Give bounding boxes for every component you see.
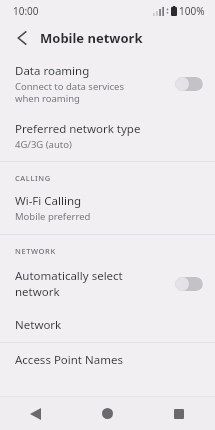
button[interactable]: Automatically select network <box>0 260 215 309</box>
staticText: Preferred network type <box>15 121 141 137</box>
button[interactable]: Home <box>71 397 143 430</box>
staticText: Wi-Fi Calling <box>15 193 82 209</box>
button[interactable]: Network <box>0 309 215 342</box>
button[interactable]: Access Point Names <box>0 343 215 377</box>
button[interactable]: Toggle <box>175 77 203 91</box>
button[interactable]: Recent apps <box>143 397 215 430</box>
staticText: Connect to data services when roaming <box>15 80 138 105</box>
staticText: Data roaming <box>15 63 90 79</box>
staticText: Automatically select network <box>15 268 169 300</box>
button[interactable]: Wi-Fi Calling <box>0 187 215 234</box>
staticText: CALLING <box>15 173 51 183</box>
button[interactable]: Back <box>0 397 71 430</box>
staticText: Mobile preferred <box>15 210 203 223</box>
staticText: Mobile network <box>40 29 143 47</box>
staticText: 100% <box>179 4 205 18</box>
button[interactable]: Preferred network type <box>0 114 215 161</box>
button[interactable]: Data roaming <box>0 54 215 114</box>
staticText: 4G/3G (auto) <box>15 138 203 151</box>
staticText: Access Point Names <box>15 352 203 368</box>
staticText: 10:00 <box>13 4 39 18</box>
button[interactable]: Back <box>8 24 36 52</box>
staticText: NETWORK <box>15 246 56 256</box>
button[interactable]: Toggle <box>175 277 203 291</box>
staticText: Network <box>15 317 203 333</box>
